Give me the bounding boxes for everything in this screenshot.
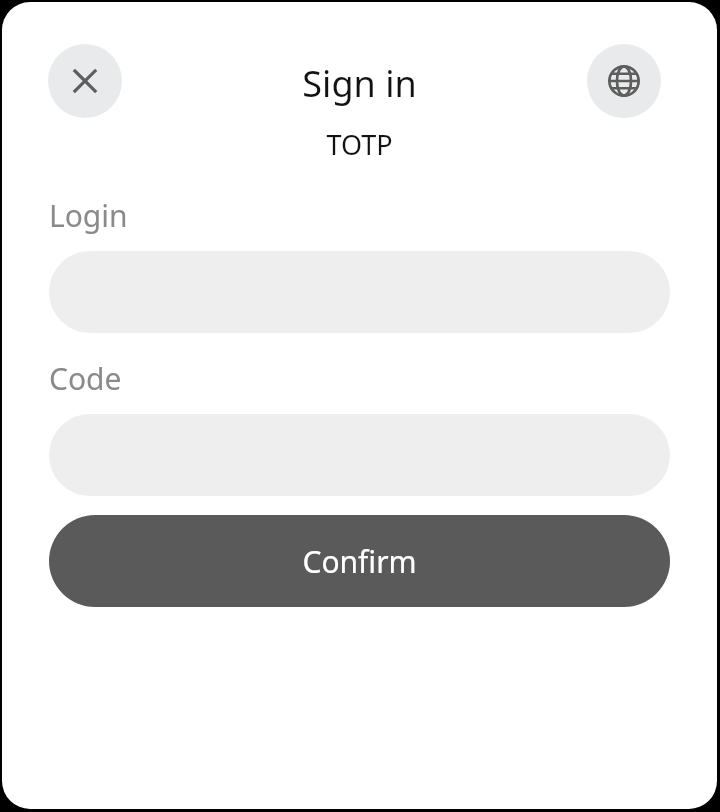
staticText: Login <box>49 195 128 236</box>
button[interactable]: Change language <box>587 44 661 118</box>
button[interactable]: Close <box>48 44 122 118</box>
staticText: Code <box>49 358 122 399</box>
staticText: Sign in <box>2 59 717 108</box>
staticText: Confirm <box>302 541 417 582</box>
staticText: TOTP <box>2 126 717 163</box>
button[interactable]: Confirm <box>49 515 670 607</box>
